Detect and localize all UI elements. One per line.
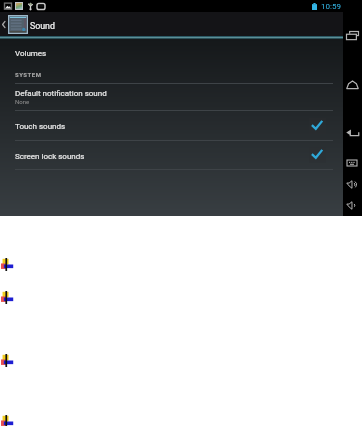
button[interactable]: Screen lock sounds bbox=[0, 141, 343, 169]
other: Toggle Touch sounds bbox=[309, 118, 326, 134]
button[interactable]: Default notification sound bbox=[0, 84, 343, 110]
other: Toggle Screen lock sounds bbox=[309, 147, 326, 163]
staticText: 10:59 bbox=[321, 2, 341, 11]
staticText: Default notification sound bbox=[15, 89, 107, 98]
button[interactable]: Touch sounds bbox=[0, 111, 343, 140]
staticText: Screen lock sounds bbox=[15, 152, 309, 161]
staticText: Volumes bbox=[15, 49, 47, 58]
button[interactable]: Navigate up bbox=[0, 12, 343, 36]
other: Back bbox=[346, 129, 359, 138]
other: Navigate up bbox=[1, 19, 6, 30]
other: Home bbox=[346, 80, 359, 89]
other: Keyboard bbox=[347, 160, 357, 166]
other: Volume up bbox=[346, 180, 359, 189]
staticText: SYSTEM bbox=[15, 71, 42, 78]
other: Volume down bbox=[346, 201, 359, 210]
button[interactable]: Volumes bbox=[0, 39, 343, 66]
other: Recent apps bbox=[346, 31, 359, 40]
staticText: Touch sounds bbox=[15, 122, 309, 131]
staticText: Sound bbox=[30, 21, 55, 31]
staticText: None bbox=[15, 98, 30, 105]
